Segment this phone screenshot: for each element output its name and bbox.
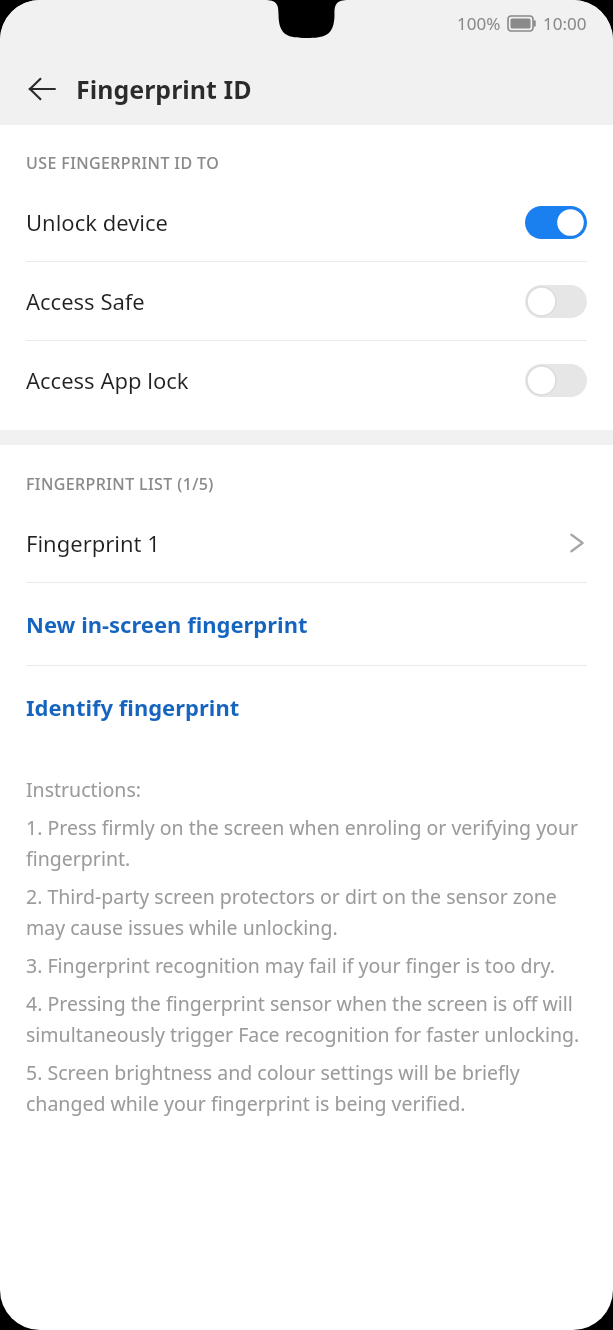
button[interactable]: Unlock device [0, 183, 613, 261]
staticText: 2. Third-party screen protectors or dirt… [26, 883, 591, 941]
staticText: 100% [457, 12, 501, 35]
staticText: 3. Fingerprint recognition may fail if y… [26, 952, 555, 979]
staticText: Fingerprint ID [76, 72, 252, 106]
staticText: 10:00 [543, 12, 587, 35]
staticText: FINGERPRINT LIST (1/5) [26, 473, 214, 495]
staticText: Fingerprint 1 [26, 528, 160, 558]
staticText: USE FINGERPRINT ID TO [26, 152, 220, 174]
button[interactable]: New in-screen fingerprint [0, 583, 613, 665]
button[interactable]: Access Safe [0, 262, 613, 340]
button[interactable]: Fingerprint 1 [0, 504, 613, 582]
button[interactable]: Back [14, 61, 70, 117]
staticText: Identify fingerprint [26, 692, 240, 722]
staticText: Unlock device [26, 207, 169, 237]
staticText: Access App lock [26, 365, 189, 395]
staticText: Access Safe [26, 286, 145, 316]
button[interactable]: Access App lock [0, 341, 613, 419]
staticText: 1. Press firmly on the screen when enrol… [26, 814, 591, 872]
staticText: 4. Pressing the fingerprint sensor when … [26, 990, 591, 1048]
staticText: New in-screen fingerprint [26, 609, 308, 639]
staticText: Instructions: [26, 776, 141, 803]
button[interactable]: Identify fingerprint [0, 666, 613, 748]
staticText: 5. Screen brightness and colour settings… [26, 1059, 591, 1117]
